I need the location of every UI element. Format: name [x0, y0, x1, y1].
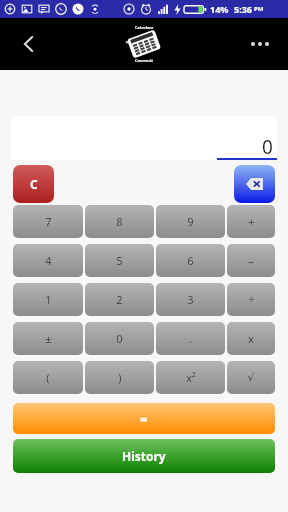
staticText: + [248, 214, 255, 229]
staticText: 1 [45, 292, 52, 307]
staticText: 4 [45, 253, 52, 268]
button[interactable]: 6 [156, 244, 225, 277]
button[interactable]: . [156, 322, 225, 355]
button[interactable]: History [13, 439, 275, 473]
staticText: 0 [262, 134, 273, 160]
button[interactable]: ÷ [227, 283, 275, 316]
staticText: – [248, 253, 254, 268]
button[interactable]: 0 [85, 322, 154, 355]
staticText: ± [45, 331, 52, 346]
staticText: x² [186, 370, 196, 385]
staticText: x [248, 331, 254, 346]
button[interactable]: ± [13, 322, 83, 355]
staticText: 8 [116, 214, 123, 229]
button[interactable]: 8 [85, 205, 154, 238]
button[interactable]: + [227, 205, 275, 238]
staticText: C [30, 176, 38, 192]
staticText: 5 [116, 253, 123, 268]
button[interactable]: Back [10, 25, 48, 63]
staticText: 14% [210, 3, 229, 15]
button[interactable]: 5 [85, 244, 154, 277]
staticText: 3 [187, 292, 194, 307]
staticText: 5:36 [234, 3, 252, 15]
staticText: 7 [45, 214, 52, 229]
staticText: √ [247, 371, 255, 384]
button[interactable]: Backspace [234, 165, 275, 203]
staticText: ) [118, 370, 122, 385]
button[interactable]: C [13, 165, 54, 203]
staticText: 6 [187, 253, 194, 268]
staticText: . [189, 331, 192, 346]
button[interactable]: ) [85, 361, 154, 394]
staticText: Calcolare [135, 25, 154, 30]
button[interactable]: x [227, 322, 275, 355]
button[interactable]: 9 [156, 205, 225, 238]
staticText: ÷ [248, 292, 255, 307]
button[interactable]: More options [240, 24, 280, 64]
button[interactable]: 2 [85, 283, 154, 316]
button[interactable]: x² [156, 361, 225, 394]
staticText: = [140, 410, 148, 428]
button[interactable]: ( [13, 361, 83, 394]
button[interactable]: = [13, 403, 275, 434]
button[interactable]: 4 [13, 244, 83, 277]
staticText: History [122, 448, 166, 464]
staticText: Convenit [135, 58, 153, 63]
button[interactable]: 3 [156, 283, 225, 316]
button[interactable]: 1 [13, 283, 83, 316]
staticText: 9 [187, 214, 194, 229]
staticText: 0 [116, 331, 123, 346]
button[interactable]: √ [227, 361, 275, 394]
button[interactable]: 7 [13, 205, 83, 238]
staticText: ( [46, 370, 50, 385]
button[interactable]: – [227, 244, 275, 277]
staticText: PM [254, 5, 264, 13]
staticText: 2 [116, 292, 123, 307]
